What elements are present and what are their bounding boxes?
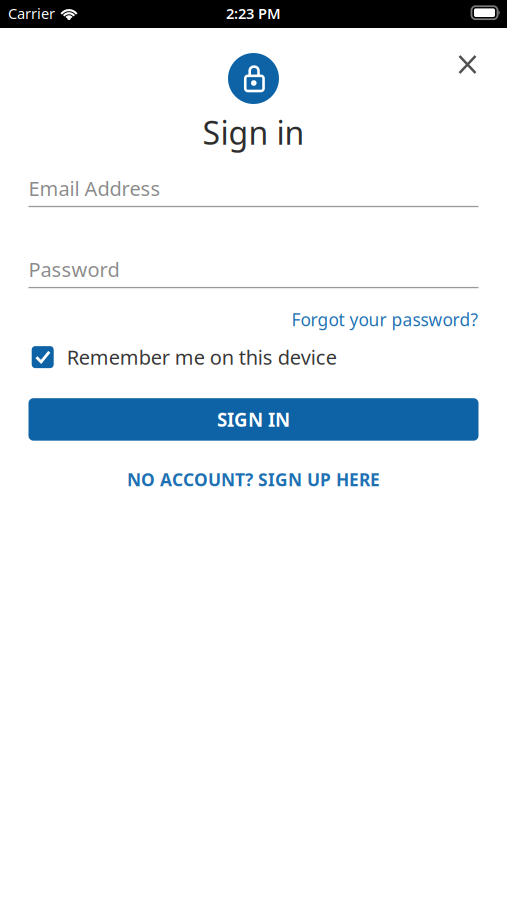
- button[interactable]: Forgot your password?: [291, 308, 478, 331]
- staticText: Remember me on this device: [67, 344, 337, 370]
- staticText: Sign in: [202, 111, 304, 153]
- staticText: SIGN IN: [217, 407, 290, 432]
- staticText: Email Address: [28, 175, 160, 202]
- button[interactable]: Remember me on this device: [32, 344, 478, 370]
- button[interactable]: Close: [447, 44, 487, 85]
- staticText: 2:23 PM: [226, 3, 281, 23]
- staticText: NO ACCOUNT? SIGN UP HERE: [127, 468, 380, 491]
- staticText: Password: [28, 256, 119, 283]
- staticText: Carrier: [8, 3, 55, 23]
- button[interactable]: NO ACCOUNT? SIGN UP HERE: [127, 468, 380, 491]
- button[interactable]: SIGN IN: [28, 398, 478, 441]
- staticText: Forgot your password?: [291, 308, 478, 331]
